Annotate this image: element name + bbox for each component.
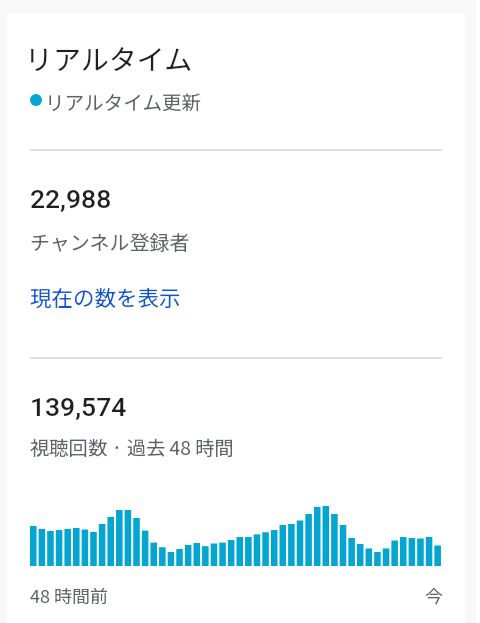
- staticText: チャンネル登録者: [30, 227, 190, 256]
- button[interactable]: 現在の数を表示: [24, 275, 187, 318]
- staticText: 22,988: [30, 183, 112, 214]
- staticText: リアルタイム: [25, 38, 193, 79]
- staticText: 視聴回数 · 過去 48 時間: [30, 433, 234, 461]
- staticText: 今: [30, 582, 443, 608]
- staticText: 現在の数を表示: [30, 281, 181, 312]
- staticText: 139,574: [30, 391, 127, 422]
- other: ライブ: [30, 94, 42, 106]
- staticText: リアルタイム更新: [45, 87, 202, 115]
- staticText: 48 時間前: [30, 582, 109, 608]
- other: 過去 48 時間の視聴回数グラフ: [30, 506, 443, 566]
